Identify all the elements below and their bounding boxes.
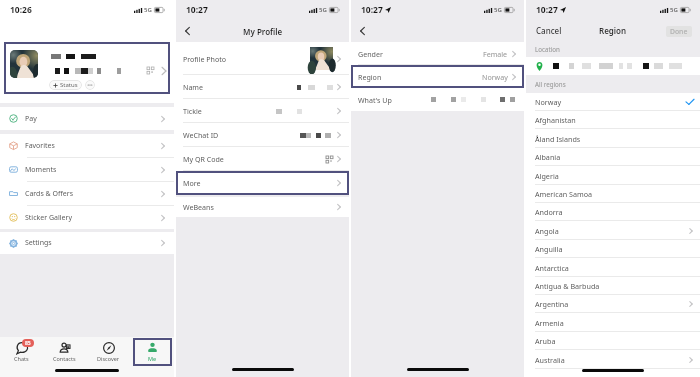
staticText: Cards & Offers	[25, 189, 160, 199]
staticText: Region	[358, 72, 482, 82]
staticText: Profile Photo	[183, 54, 310, 64]
staticText: Discover	[97, 355, 120, 362]
staticText: Algeria	[535, 171, 694, 181]
staticText: All regions	[535, 80, 566, 88]
staticText: Armenia	[535, 318, 694, 328]
button[interactable]: What's Up	[351, 88, 524, 111]
staticText: Australia	[535, 355, 688, 365]
staticText: 85	[25, 340, 31, 347]
staticText: My QR Code	[183, 154, 326, 164]
staticText: Aruba	[535, 336, 694, 346]
button[interactable]: Favorites	[0, 134, 174, 157]
staticText: Andorra	[535, 207, 694, 217]
button[interactable]: WeChat ID	[176, 123, 349, 147]
button[interactable]: Status	[49, 80, 82, 90]
staticText: Albania	[535, 152, 694, 162]
staticText: Status	[60, 81, 78, 89]
button[interactable]: More	[85, 80, 95, 90]
button[interactable]: More	[176, 171, 349, 195]
staticText: 10:27	[186, 4, 208, 16]
button[interactable]: Name	[176, 75, 349, 99]
button[interactable]: Back	[355, 24, 369, 38]
button[interactable]: Afghanistan	[526, 111, 700, 129]
button[interactable]: Status	[4, 42, 170, 94]
staticText: Chats	[14, 355, 29, 362]
staticText: Norway	[482, 72, 508, 82]
button[interactable]: Norway	[526, 93, 700, 111]
button[interactable]: Back	[180, 24, 194, 38]
button[interactable]: Armenia	[526, 314, 700, 332]
button[interactable]: Profile Photo	[176, 42, 349, 75]
staticText: Anguilla	[535, 244, 694, 254]
staticText: Pay	[25, 114, 160, 124]
staticText: Cancel	[536, 25, 562, 36]
button[interactable]: Åland Islands	[526, 130, 700, 148]
button[interactable]: My QR Code	[176, 147, 349, 171]
staticText: Moments	[25, 165, 160, 175]
staticText: 10:26	[10, 4, 32, 16]
button[interactable]: Gender	[351, 42, 524, 65]
staticText: Settings	[25, 238, 160, 248]
staticText: WeChat ID	[183, 130, 300, 140]
button[interactable]: Andorra	[526, 203, 700, 221]
staticText: 10:27	[536, 4, 558, 16]
staticText: Norway	[535, 97, 686, 107]
staticText: Sticker Gallery	[25, 213, 160, 223]
button[interactable]	[526, 57, 700, 75]
button[interactable]: Pay	[0, 107, 174, 130]
button[interactable]: Aruba	[526, 332, 700, 350]
button[interactable]: Algeria	[526, 167, 700, 185]
staticText: Region	[599, 25, 627, 36]
staticText: WeBeans	[183, 202, 333, 212]
staticText: 5G	[494, 6, 502, 14]
button[interactable]: Australia	[526, 351, 700, 369]
staticText: 5G	[319, 6, 327, 14]
button[interactable]: Discover	[86, 338, 130, 366]
button[interactable]: Antarctica	[526, 259, 700, 277]
staticText: Done	[670, 27, 688, 36]
staticText: 10:27	[361, 4, 383, 16]
staticText: 5G	[670, 6, 678, 14]
button[interactable]: Argentina	[526, 295, 700, 313]
button[interactable]: Cards & Offers	[0, 182, 174, 205]
button[interactable]: Settings	[0, 232, 174, 254]
button[interactable]: Moments	[0, 158, 174, 181]
staticText: Female	[483, 49, 508, 59]
staticText: My Profile	[243, 26, 283, 37]
button[interactable]: Tickle	[176, 99, 349, 123]
button[interactable]: Cancel	[526, 20, 572, 41]
staticText: American Samoa	[535, 189, 694, 199]
staticText: Favorites	[25, 141, 160, 151]
staticText: Angola	[535, 226, 688, 236]
staticText: More	[183, 178, 336, 188]
button[interactable]: 85	[0, 338, 43, 366]
staticText: Åland Islands	[535, 134, 694, 144]
staticText: Antigua & Barbuda	[535, 281, 694, 291]
button[interactable]: Region	[351, 65, 524, 88]
button[interactable]: Done	[666, 26, 692, 37]
button[interactable]: Angola	[526, 222, 700, 240]
button[interactable]: American Samoa	[526, 185, 700, 203]
button[interactable]: Albania	[526, 148, 700, 166]
staticText: Name	[183, 82, 297, 92]
staticText: Me	[148, 355, 157, 362]
staticText: What's Up	[358, 95, 431, 105]
staticText: Contacts	[53, 355, 76, 362]
staticText: Antarctica	[535, 263, 694, 273]
button[interactable]: Me	[133, 338, 172, 366]
button[interactable]: Sticker Gallery	[0, 206, 174, 229]
staticText: 5G	[144, 6, 152, 14]
staticText: Afghanistan	[535, 115, 694, 125]
staticText: Argentina	[535, 299, 688, 309]
staticText: Tickle	[183, 106, 276, 116]
staticText: Gender	[358, 49, 483, 59]
staticText: Location	[535, 45, 560, 53]
button[interactable]: Anguilla	[526, 240, 700, 258]
button[interactable]: WeBeans	[176, 197, 349, 217]
button[interactable]: Contacts	[43, 338, 86, 366]
button[interactable]: Antigua & Barbuda	[526, 277, 700, 295]
